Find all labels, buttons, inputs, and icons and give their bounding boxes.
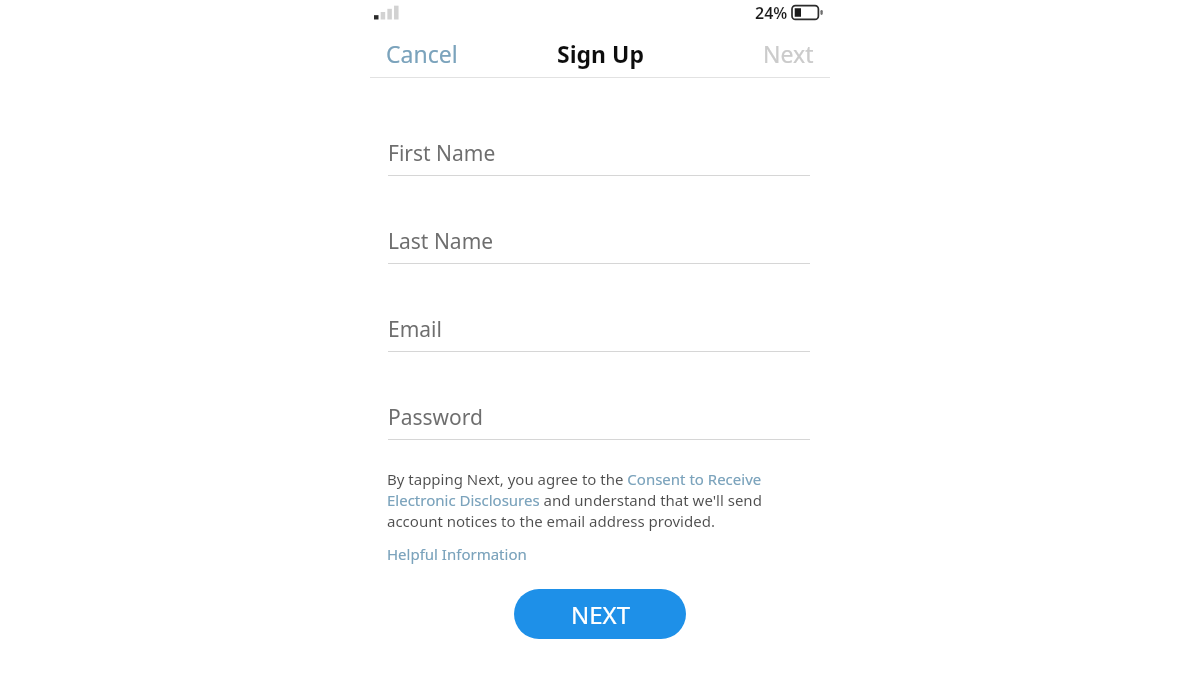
staticText: Last Name — [388, 227, 494, 256]
button[interactable]: Next — [747, 30, 830, 77]
staticText: 24% — [755, 2, 788, 24]
button[interactable]: NEXT — [514, 589, 686, 639]
staticText: Email — [388, 315, 442, 344]
staticText: Password — [388, 403, 483, 432]
button[interactable]: First Name — [388, 131, 810, 176]
staticText: Next — [763, 38, 814, 69]
staticText: Sign Up — [557, 38, 644, 69]
staticText: NEXT — [571, 598, 630, 631]
button[interactable]: Helpful Information — [387, 541, 527, 567]
button[interactable]: By tapping Next, you agree to the Consen… — [387, 469, 765, 532]
button[interactable]: Cancel — [370, 30, 474, 77]
button[interactable]: Last Name — [388, 219, 810, 264]
button[interactable]: Password — [388, 395, 810, 440]
button[interactable]: Email — [388, 307, 810, 352]
staticText: Cancel — [386, 38, 458, 69]
staticText: By tapping Next, you agree to the Consen… — [387, 469, 765, 532]
staticText: Helpful Information — [387, 544, 527, 564]
staticText: First Name — [388, 139, 496, 168]
